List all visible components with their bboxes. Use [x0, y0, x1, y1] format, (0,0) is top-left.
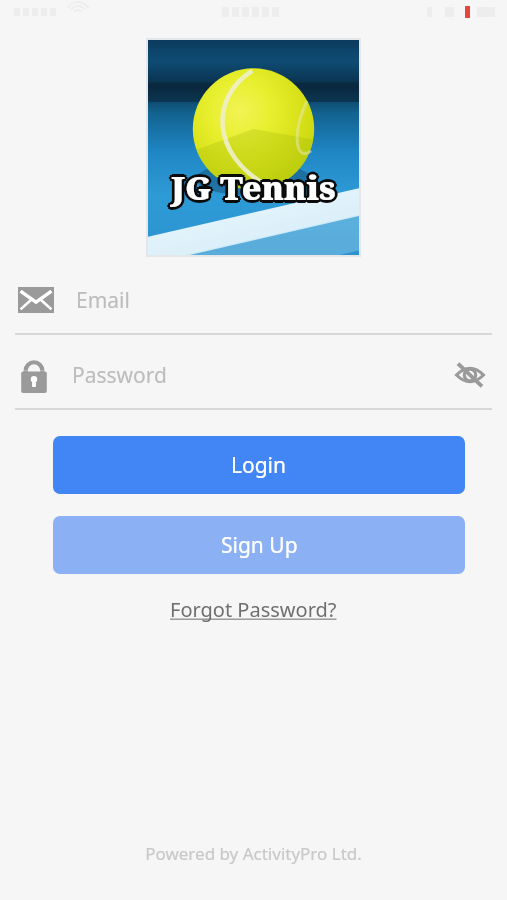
staticText: JG Tennis: [171, 163, 336, 208]
staticText: JG Tennis: [168, 165, 333, 210]
staticText: JG Tennis: [169, 163, 334, 208]
button[interactable]: Show password: [451, 356, 489, 394]
staticText: Email: [76, 286, 130, 315]
staticText: JG Tennis: [171, 167, 336, 212]
staticText: Password: [72, 361, 167, 390]
staticText: JG Tennis: [169, 167, 334, 212]
staticText: JG Tennis: [171, 162, 336, 207]
staticText: JG Tennis: [169, 165, 334, 210]
button[interactable]: Sign Up: [53, 516, 465, 574]
button[interactable]: Forgot Password?: [164, 592, 343, 627]
staticText: Forgot Password?: [170, 596, 337, 623]
button[interactable]: Email: [0, 274, 507, 326]
staticText: JG Tennis: [173, 167, 338, 212]
staticText: JG Tennis: [174, 165, 339, 210]
staticText: Sign Up: [221, 531, 298, 560]
staticText: JG Tennis: [171, 168, 336, 213]
staticText: JG Tennis: [171, 165, 336, 210]
staticText: Powered by ActivityPro Ltd.: [145, 842, 362, 865]
button[interactable]: Password: [0, 348, 507, 402]
staticText: JG Tennis: [173, 163, 338, 208]
staticText: JG Tennis: [173, 165, 338, 210]
button[interactable]: Login: [53, 436, 465, 494]
staticText: Login: [231, 451, 287, 480]
